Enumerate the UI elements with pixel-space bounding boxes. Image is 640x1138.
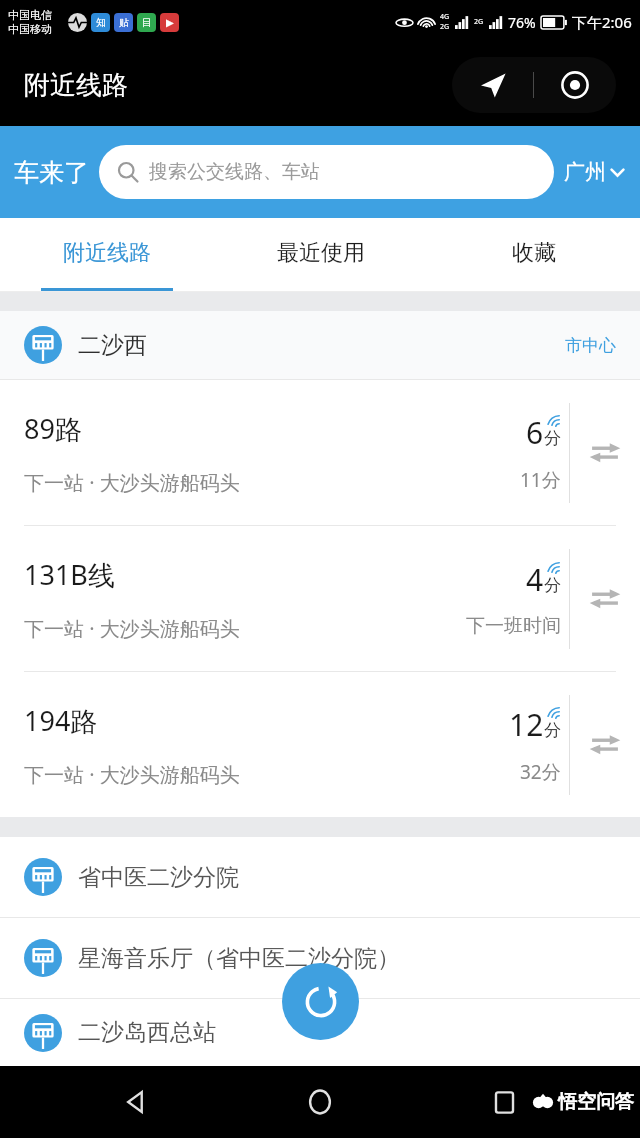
button[interactable]: 二沙岛西总站 bbox=[0, 999, 640, 1066]
staticText: 11分 bbox=[520, 467, 561, 493]
button[interactable]: Switch direction bbox=[570, 526, 640, 671]
staticText: 中国电信 bbox=[8, 8, 52, 22]
staticText: 二沙岛西总站 bbox=[78, 1018, 216, 1047]
staticText: 131B线 bbox=[24, 556, 115, 593]
staticText: 6 bbox=[526, 412, 544, 453]
button[interactable]: 89路 bbox=[0, 380, 640, 525]
staticText: 4G bbox=[440, 12, 450, 22]
staticText: 89路 bbox=[24, 410, 82, 447]
staticText: 32分 bbox=[520, 759, 561, 785]
staticText: 下午2:06 bbox=[572, 12, 632, 32]
button[interactable]: 省中医二沙分院 bbox=[0, 837, 640, 917]
button[interactable]: Home bbox=[294, 1076, 346, 1128]
staticText: 分 bbox=[544, 575, 561, 596]
button[interactable]: Navigate bbox=[452, 57, 533, 113]
staticText: 2G bbox=[440, 22, 450, 32]
button[interactable]: Recents bbox=[478, 1076, 530, 1128]
staticText: 车来了 bbox=[14, 157, 89, 188]
staticText: 2G bbox=[474, 17, 484, 27]
staticText: 4 bbox=[526, 559, 544, 600]
staticText: 贴 bbox=[119, 16, 129, 29]
staticText: 最近使用 bbox=[277, 239, 365, 267]
button[interactable]: 最近使用 bbox=[214, 218, 427, 288]
staticText: 下一站 · 大沙头游船码头 bbox=[24, 469, 240, 496]
button[interactable]: 二沙西 bbox=[0, 311, 640, 379]
staticText: ▶ bbox=[166, 17, 174, 29]
button[interactable]: 搜索公交线路、车站 bbox=[99, 145, 554, 199]
staticText: 目 bbox=[142, 16, 152, 29]
button[interactable]: 收藏 bbox=[427, 218, 640, 288]
staticText: 知 bbox=[96, 16, 106, 29]
staticText: 分 bbox=[544, 428, 561, 449]
staticText: 下一班时间 bbox=[466, 614, 561, 638]
staticText: 194路 bbox=[24, 702, 98, 739]
staticText: 市中心 bbox=[565, 335, 616, 356]
button[interactable]: 131B线 bbox=[0, 526, 640, 671]
button[interactable]: Navigate bbox=[452, 57, 616, 113]
staticText: 下一站 · 大沙头游船码头 bbox=[24, 761, 240, 788]
staticText: 76% bbox=[508, 13, 536, 32]
button[interactable]: 194路 bbox=[0, 672, 640, 817]
staticText: 下一站 · 大沙头游船码头 bbox=[24, 615, 240, 642]
staticText: 省中医二沙分院 bbox=[78, 863, 239, 892]
button[interactable]: 星海音乐厅（省中医二沙分院） bbox=[0, 918, 640, 998]
staticText: 星海音乐厅（省中医二沙分院） bbox=[78, 944, 400, 973]
button[interactable]: Switch direction bbox=[570, 672, 640, 817]
staticText: 广州 bbox=[564, 159, 606, 185]
button[interactable]: 广州 bbox=[564, 159, 626, 185]
button[interactable]: My location bbox=[534, 57, 616, 113]
button[interactable]: Refresh bbox=[282, 963, 359, 1040]
staticText: 附近线路 bbox=[63, 239, 151, 267]
button[interactable]: Back bbox=[110, 1076, 162, 1128]
staticText: 收藏 bbox=[512, 239, 556, 267]
staticText: 附近线路 bbox=[24, 69, 128, 102]
staticText: 分 bbox=[544, 720, 561, 741]
staticText: 二沙西 bbox=[78, 331, 565, 360]
button[interactable]: 附近线路 bbox=[0, 218, 214, 288]
staticText: 12 bbox=[509, 704, 544, 745]
staticText: 搜索公交线路、车站 bbox=[149, 160, 320, 184]
button[interactable]: Switch direction bbox=[570, 380, 640, 525]
staticText: 中国移动 bbox=[8, 22, 52, 36]
staticText: 悟空问答 bbox=[558, 1090, 634, 1114]
